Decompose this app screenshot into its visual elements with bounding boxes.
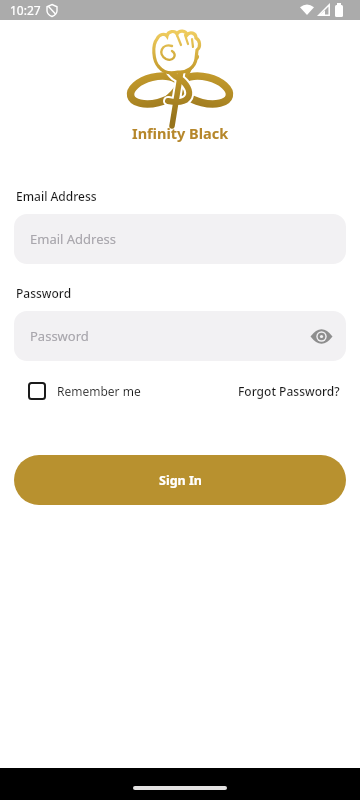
staticText: Remember me bbox=[57, 383, 141, 399]
button[interactable]: Password bbox=[14, 311, 346, 361]
staticText: Password bbox=[16, 285, 72, 301]
staticText: Infinity Black bbox=[132, 123, 229, 143]
button[interactable]: Forgot Password? bbox=[238, 383, 340, 399]
button[interactable]: Email Address bbox=[14, 214, 346, 264]
button[interactable]: Sign In bbox=[14, 455, 346, 505]
staticText: 10:27 bbox=[10, 2, 41, 18]
staticText: Email Address bbox=[30, 230, 116, 248]
staticText: Password bbox=[30, 327, 89, 345]
button[interactable]: Remember me bbox=[14, 382, 141, 400]
staticText: Email Address bbox=[16, 188, 97, 204]
staticText: Sign In bbox=[159, 472, 202, 489]
